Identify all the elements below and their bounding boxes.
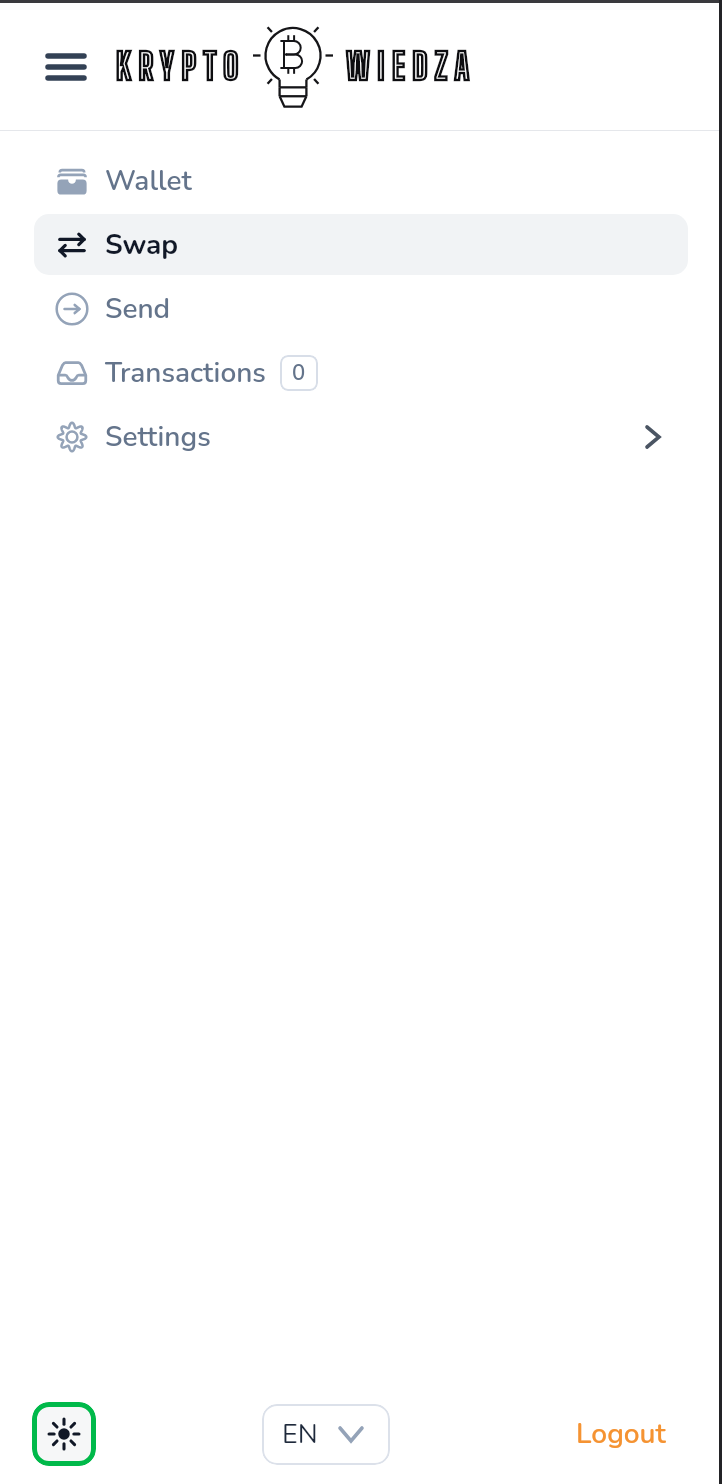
- staticText: 0: [292, 358, 306, 388]
- staticText: Settings: [105, 418, 211, 456]
- button[interactable]: Menu: [48, 52, 84, 82]
- staticText: Send: [105, 290, 171, 328]
- button[interactable]: Wallet: [34, 150, 688, 211]
- staticText: KRYPTO: [116, 45, 246, 88]
- button[interactable]: Settings: [34, 406, 688, 467]
- button[interactable]: Swap: [34, 214, 688, 275]
- staticText: Wallet: [105, 162, 192, 200]
- staticText: Logout: [576, 1415, 666, 1453]
- staticText: EN: [282, 1416, 318, 1453]
- button[interactable]: Transactions: [34, 342, 688, 403]
- button[interactable]: Toggle light and dark theme: [32, 1402, 96, 1466]
- staticText: Transactions: [105, 354, 266, 392]
- button[interactable]: EN: [262, 1404, 390, 1465]
- staticText: Swap: [105, 226, 179, 264]
- button[interactable]: Send: [34, 278, 688, 339]
- button[interactable]: Logout: [576, 1415, 666, 1453]
- staticText: WIEDZA: [346, 45, 477, 88]
